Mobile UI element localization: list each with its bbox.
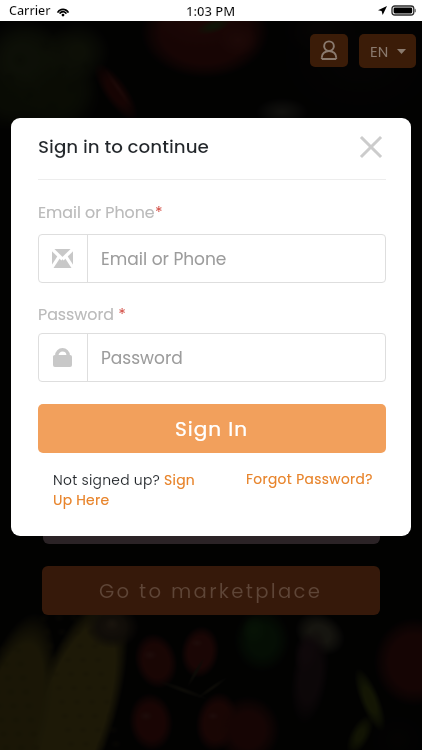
button[interactable]: Account xyxy=(310,34,348,67)
button[interactable]: Email or Phone xyxy=(38,234,386,283)
staticText: Password xyxy=(101,346,183,370)
staticText: Carrier xyxy=(9,2,51,19)
staticText: EN xyxy=(370,41,389,62)
staticText: * xyxy=(114,303,126,325)
button[interactable]: Create account xyxy=(43,499,380,544)
button[interactable]: Forgot Password? xyxy=(246,470,373,489)
staticText: Sign In xyxy=(175,415,249,443)
button[interactable]: Close xyxy=(356,132,386,162)
staticText: Password xyxy=(38,303,114,325)
button[interactable]: Sign In xyxy=(38,404,386,453)
staticText: 1:03 PM xyxy=(186,2,236,20)
staticText: Email or Phone xyxy=(101,247,227,271)
button[interactable]: Not signed up? Sign Up Here xyxy=(53,470,199,510)
button[interactable]: Go to marketplace xyxy=(42,566,380,615)
staticText: Sign in to continue xyxy=(38,134,209,160)
staticText: Email or Phone xyxy=(38,201,155,223)
staticText: Go to marketplace xyxy=(99,577,323,605)
button[interactable]: Password xyxy=(38,333,386,382)
button[interactable]: EN xyxy=(359,34,416,68)
staticText: * xyxy=(155,201,163,223)
